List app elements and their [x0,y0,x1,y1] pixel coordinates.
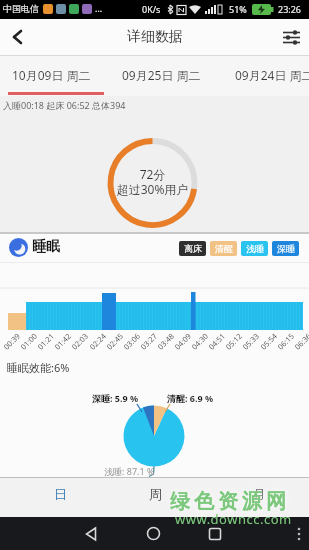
button[interactable] [0,56,110,96]
staticText: 清醒 [215,243,233,254]
staticText: 02:24 [87,330,109,352]
staticText: 06:36 [292,330,309,352]
staticText: 06:15 [275,330,297,352]
staticText: 00:39 [1,330,23,352]
staticText: 03:27 [138,330,160,352]
staticText: 01:00 [18,330,40,352]
staticText: 0K/s [142,3,161,15]
button[interactable]: 清醒 [210,241,237,256]
staticText: 04:51 [206,330,228,352]
staticText: 月 [253,486,266,502]
staticText: 浅睡 [246,243,264,254]
staticText: 03:48 [155,330,177,352]
staticText: 详细数据 [127,28,183,46]
button[interactable] [74,517,107,550]
button[interactable] [10,478,110,517]
button[interactable] [0,19,36,55]
button[interactable] [110,56,220,96]
staticText: 离床 [184,243,202,254]
staticText: 中国电信 [3,3,39,14]
staticText: 09月25日 周二 [122,67,201,83]
button[interactable] [288,517,309,550]
button[interactable] [198,517,231,550]
staticText: 周 [149,486,162,502]
staticText: 10月09日 周二 [12,67,91,83]
button[interactable]: 浅睡 [241,241,268,256]
staticText: 绿色资源网 [168,489,288,514]
staticText: 03:06 [121,330,143,352]
staticText: 入睡00:18 起床 06:52 总体394 [3,99,126,111]
button[interactable] [273,19,309,55]
button[interactable]: 深睡 [272,241,299,256]
staticText: www.downcc.com [175,510,292,528]
button[interactable] [137,517,170,550]
staticText: 超过30%用户 [0,181,307,197]
staticText: 09月24日 周二 [235,67,309,83]
staticText: 04:30 [189,330,211,352]
button[interactable] [110,478,205,517]
staticText: 02:45 [104,330,126,352]
staticText: 清醒: 6.9 % [167,392,214,404]
staticText: 睡眠效能:6% [7,360,70,375]
staticText: 05:54 [258,330,280,352]
staticText: … [95,2,103,14]
staticText: 睡眠 [32,238,60,256]
button[interactable] [220,56,309,96]
button[interactable] [210,478,305,517]
staticText: 05:12 [223,330,245,352]
staticText: 72分 [0,166,307,182]
staticText: 04:09 [172,330,194,352]
staticText: 02:03 [69,330,91,352]
staticText: 01:21 [35,330,57,352]
button[interactable]: 离床 [179,241,206,256]
staticText: 浅睡: 87.1 % [104,465,155,477]
staticText: 01:42 [52,330,74,352]
staticText: 23:26 [278,3,302,15]
staticText: 深睡: 5.9 % [92,392,139,404]
staticText: 51% [229,3,247,15]
staticText: 日 [54,486,67,502]
staticText: 05:33 [240,330,262,352]
staticText: 深睡 [277,243,295,254]
